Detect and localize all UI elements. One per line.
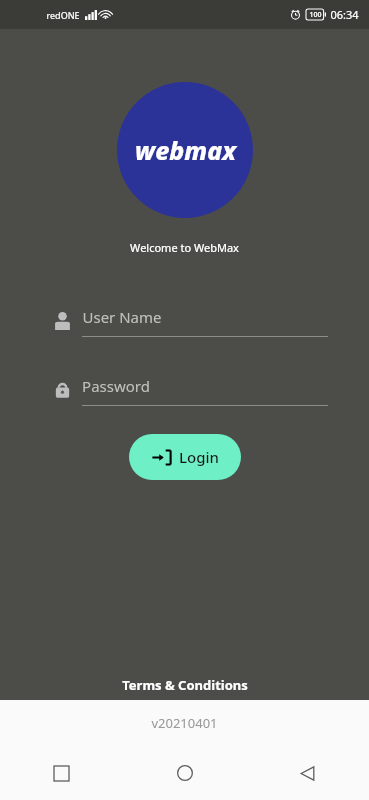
- staticText: User Name: [82, 307, 162, 327]
- staticText: 100: [309, 10, 322, 20]
- staticText: Welcome to WebMax: [130, 240, 239, 255]
- button[interactable]: Password: [42, 368, 328, 410]
- staticText: redONE: [46, 9, 80, 21]
- button[interactable]: Back: [246, 746, 369, 800]
- button[interactable]: Recents: [0, 746, 123, 800]
- button[interactable]: Terms & Conditions: [114, 674, 256, 696]
- staticText: Password: [82, 376, 150, 396]
- button[interactable]: Login: [129, 434, 241, 480]
- button[interactable]: User Name: [42, 299, 328, 341]
- staticText: Login: [179, 447, 219, 467]
- staticText: v20210401: [151, 714, 218, 732]
- staticText: 06:34: [330, 7, 359, 22]
- button[interactable]: Home: [123, 746, 246, 800]
- staticText: webmax: [135, 133, 236, 167]
